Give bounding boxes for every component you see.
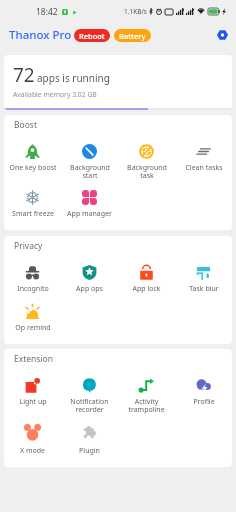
button[interactable]: Activity trampoline: [118, 377, 175, 414]
staticText: Clean tasks: [185, 163, 223, 173]
staticText: App ops: [76, 284, 103, 294]
button[interactable]: Profile: [175, 377, 232, 414]
button[interactable]: Light up: [4, 377, 61, 414]
staticText: Extension: [14, 353, 53, 365]
button[interactable]: App manager: [61, 189, 118, 219]
staticText: Thanox Pro: [9, 27, 72, 43]
staticText: Profile: [193, 397, 215, 407]
staticText: Incognito: [17, 284, 49, 294]
button[interactable]: Clean tasks: [175, 143, 232, 180]
button[interactable]: Op remind: [4, 303, 61, 333]
staticText: One key boost: [9, 163, 57, 173]
staticText: 18:42: [36, 6, 58, 18]
staticText: Plugin: [79, 446, 100, 456]
button[interactable]: Plugin: [61, 423, 118, 456]
staticText: Task blur: [189, 284, 219, 294]
button[interactable]: Battery: [114, 29, 151, 42]
button[interactable]: Background start: [61, 143, 118, 180]
staticText: Privacy: [14, 240, 43, 252]
button[interactable]: App ops: [61, 264, 118, 294]
staticText: 1.1KB/s: [124, 7, 147, 16]
button[interactable]: 72: [4, 55, 232, 110]
staticText: Smart freeze: [12, 209, 54, 219]
staticText: Background task: [127, 163, 167, 180]
staticText: Notification recorder: [70, 397, 109, 414]
button[interactable]: Smart freeze: [4, 189, 61, 219]
button[interactable]: One key boost: [4, 143, 61, 180]
staticText: Battery: [119, 31, 146, 41]
staticText: X mode: [20, 446, 45, 456]
staticText: App manager: [67, 209, 112, 219]
button[interactable]: App lock: [118, 264, 175, 294]
button[interactable]: Task blur: [175, 264, 232, 294]
button[interactable]: Incognito: [4, 264, 61, 294]
button[interactable]: Settings: [211, 24, 233, 46]
button[interactable]: Reboot: [74, 29, 110, 42]
staticText: Op remind: [15, 323, 51, 333]
staticText: Activity trampoline: [128, 397, 165, 414]
staticText: Background start: [70, 163, 110, 180]
staticText: 72: [13, 62, 35, 88]
staticText: apps is running: [37, 71, 110, 85]
button[interactable]: Notification recorder: [61, 377, 118, 414]
staticText: Reboot: [79, 31, 105, 41]
button[interactable]: Background task: [118, 143, 175, 180]
staticText: Available memory 3.02 GB: [13, 90, 97, 99]
button[interactable]: X mode: [4, 423, 61, 456]
staticText: App lock: [132, 284, 161, 294]
staticText: Light up: [19, 397, 47, 407]
staticText: Boost: [14, 119, 37, 131]
